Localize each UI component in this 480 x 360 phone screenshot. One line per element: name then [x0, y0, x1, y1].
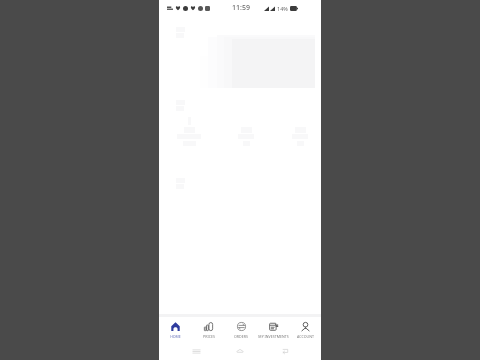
button[interactable]	[238, 127, 254, 146]
button[interactable]	[292, 127, 308, 146]
button[interactable]: MY INVESTMENTS	[257, 317, 289, 341]
button[interactable]: HOME	[159, 317, 192, 341]
button[interactable]: PRICES	[192, 317, 225, 341]
staticText: PRICES	[203, 334, 215, 339]
staticText: HOME	[170, 334, 181, 339]
button[interactable]: Back	[277, 343, 293, 359]
button[interactable]: ACCOUNT	[289, 317, 321, 341]
button[interactable]: Recent apps	[188, 343, 204, 359]
button[interactable]: Home	[232, 343, 248, 359]
staticText: 11:59	[232, 3, 250, 13]
staticText: 14%	[277, 5, 288, 12]
button[interactable]: ORDERS	[225, 317, 257, 341]
staticText: ACCOUNT	[297, 334, 314, 339]
button[interactable]	[177, 117, 201, 146]
staticText: ORDERS	[234, 334, 248, 339]
staticText: MY INVESTMENTS	[258, 334, 289, 339]
